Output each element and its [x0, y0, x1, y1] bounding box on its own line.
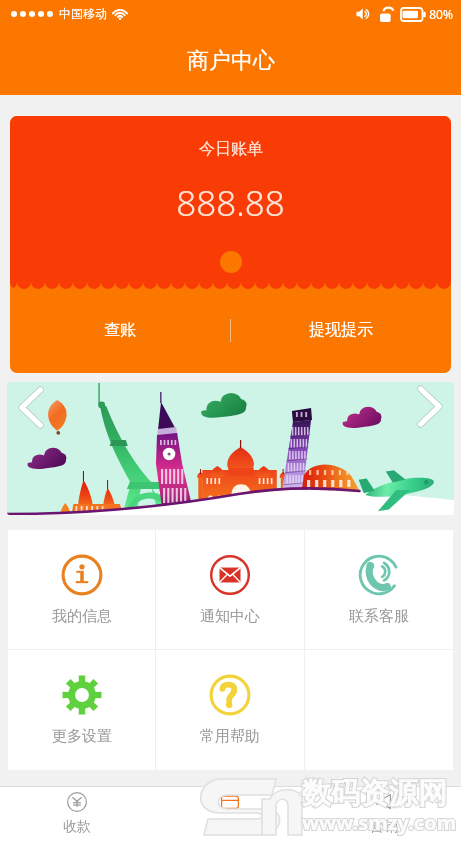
button[interactable]: 联系客服: [305, 530, 453, 649]
button[interactable]: 营销: [307, 787, 461, 841]
button[interactable]: 收款: [0, 787, 153, 841]
staticText: 通知中心: [200, 607, 260, 626]
staticText: 80%: [429, 6, 453, 22]
staticText: 收款: [63, 818, 91, 836]
button[interactable]: 查账: [10, 287, 230, 373]
staticText: 常用帮助: [200, 727, 260, 746]
staticText: 我的信息: [52, 607, 112, 626]
button[interactable]: 常用帮助: [156, 650, 304, 770]
staticText: 数码资源网: [302, 775, 447, 812]
staticText: 交易: [216, 818, 244, 836]
button[interactable]: Previous: [12, 383, 50, 431]
staticText: 中国移动: [59, 6, 107, 21]
staticText: www.smzy.com: [302, 809, 457, 836]
staticText: 数码资源网: [302, 775, 447, 812]
button[interactable]: Next: [411, 382, 449, 430]
staticText: 查账: [104, 320, 136, 340]
staticText: 今日账单: [199, 139, 263, 159]
button[interactable]: Previous: [7, 382, 454, 515]
staticText: 提现提示: [309, 320, 373, 340]
staticText: 联系客服: [349, 607, 409, 626]
staticText: 商户中心: [187, 47, 275, 75]
staticText: 营销: [370, 818, 398, 836]
staticText: www.smzy.com: [302, 809, 457, 836]
button[interactable]: 通知中心: [156, 530, 304, 649]
button[interactable]: 提现提示: [231, 287, 451, 373]
button[interactable]: 交易: [153, 787, 307, 841]
button[interactable]: 我的信息: [8, 530, 155, 649]
staticText: 888.88: [176, 179, 285, 227]
staticText: 更多设置: [52, 727, 112, 746]
button[interactable]: 更多设置: [8, 650, 155, 770]
